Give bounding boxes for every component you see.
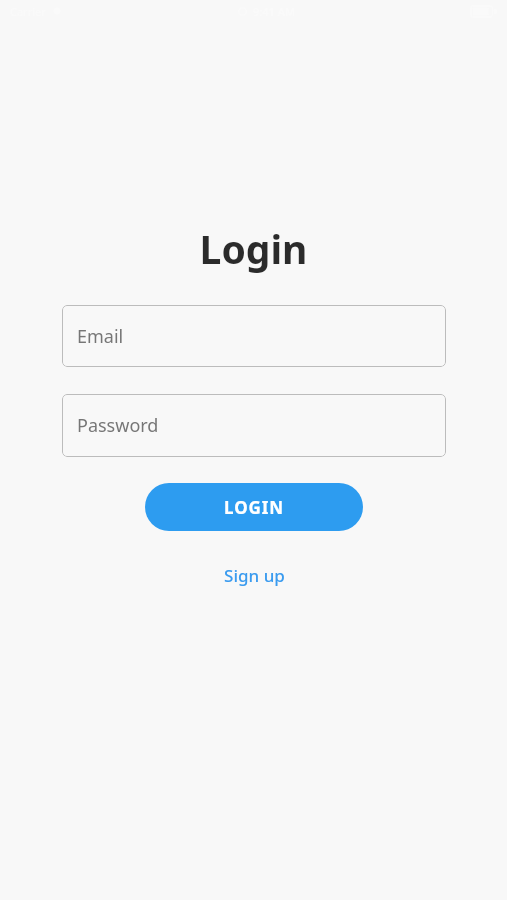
staticText: Login xyxy=(0,222,507,275)
button[interactable]: Password xyxy=(62,394,446,457)
button[interactable]: Email xyxy=(62,305,446,367)
button[interactable]: Sign up xyxy=(195,558,313,592)
staticText: Email xyxy=(77,324,124,349)
button[interactable]: LOGIN xyxy=(145,483,363,531)
staticText: LOGIN xyxy=(224,496,284,519)
staticText: Password xyxy=(77,413,159,438)
staticText: Sign up xyxy=(224,564,285,587)
